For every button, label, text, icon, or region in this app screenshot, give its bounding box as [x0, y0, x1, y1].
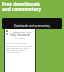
staticText: Devotionals and commentary — [14, 24, 50, 28]
button[interactable]: Free devotionals — [0, 0, 64, 18]
staticText: Daily Devotional — [10, 33, 30, 37]
staticText: Discover a free daily devotional to grow… — [6, 42, 33, 53]
staticText: Free devotionals — [2, 1, 40, 7]
staticText: and commentary — [2, 6, 42, 12]
staticText: bible study tools — [13, 30, 32, 33]
button[interactable]: Play video — [2, 18, 62, 29]
staticText: for today — [15, 36, 26, 39]
